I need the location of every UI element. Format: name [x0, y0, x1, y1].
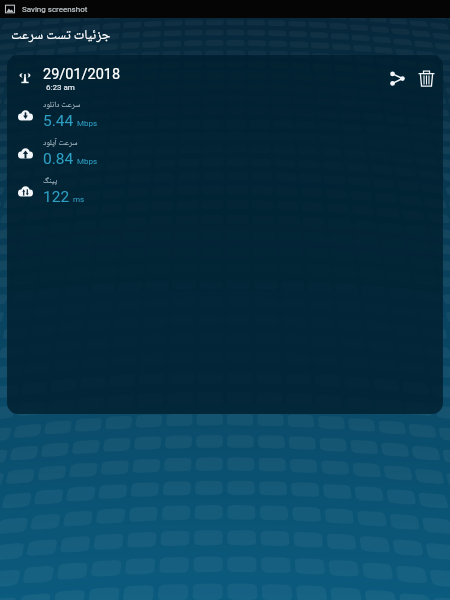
staticText: Mbps — [77, 157, 98, 166]
staticText: 5.44 — [43, 112, 74, 130]
staticText: Saving screenshot — [22, 5, 88, 14]
staticText: سرعت آپلود — [43, 136, 78, 150]
staticText: جزئیات تست سرعت — [11, 25, 111, 48]
staticText: پینگ — [43, 174, 58, 188]
staticText: 122 — [43, 188, 70, 206]
button[interactable]: Share — [383, 64, 412, 93]
staticText: 6:23 am — [46, 83, 75, 92]
staticText: 0.84 — [43, 150, 74, 168]
staticText: ms — [73, 195, 85, 204]
button[interactable]: Delete — [412, 64, 441, 93]
staticText: 29/01/2018 — [43, 66, 121, 83]
staticText: سرعت دانلود — [43, 98, 81, 112]
staticText: Mbps — [77, 119, 98, 128]
